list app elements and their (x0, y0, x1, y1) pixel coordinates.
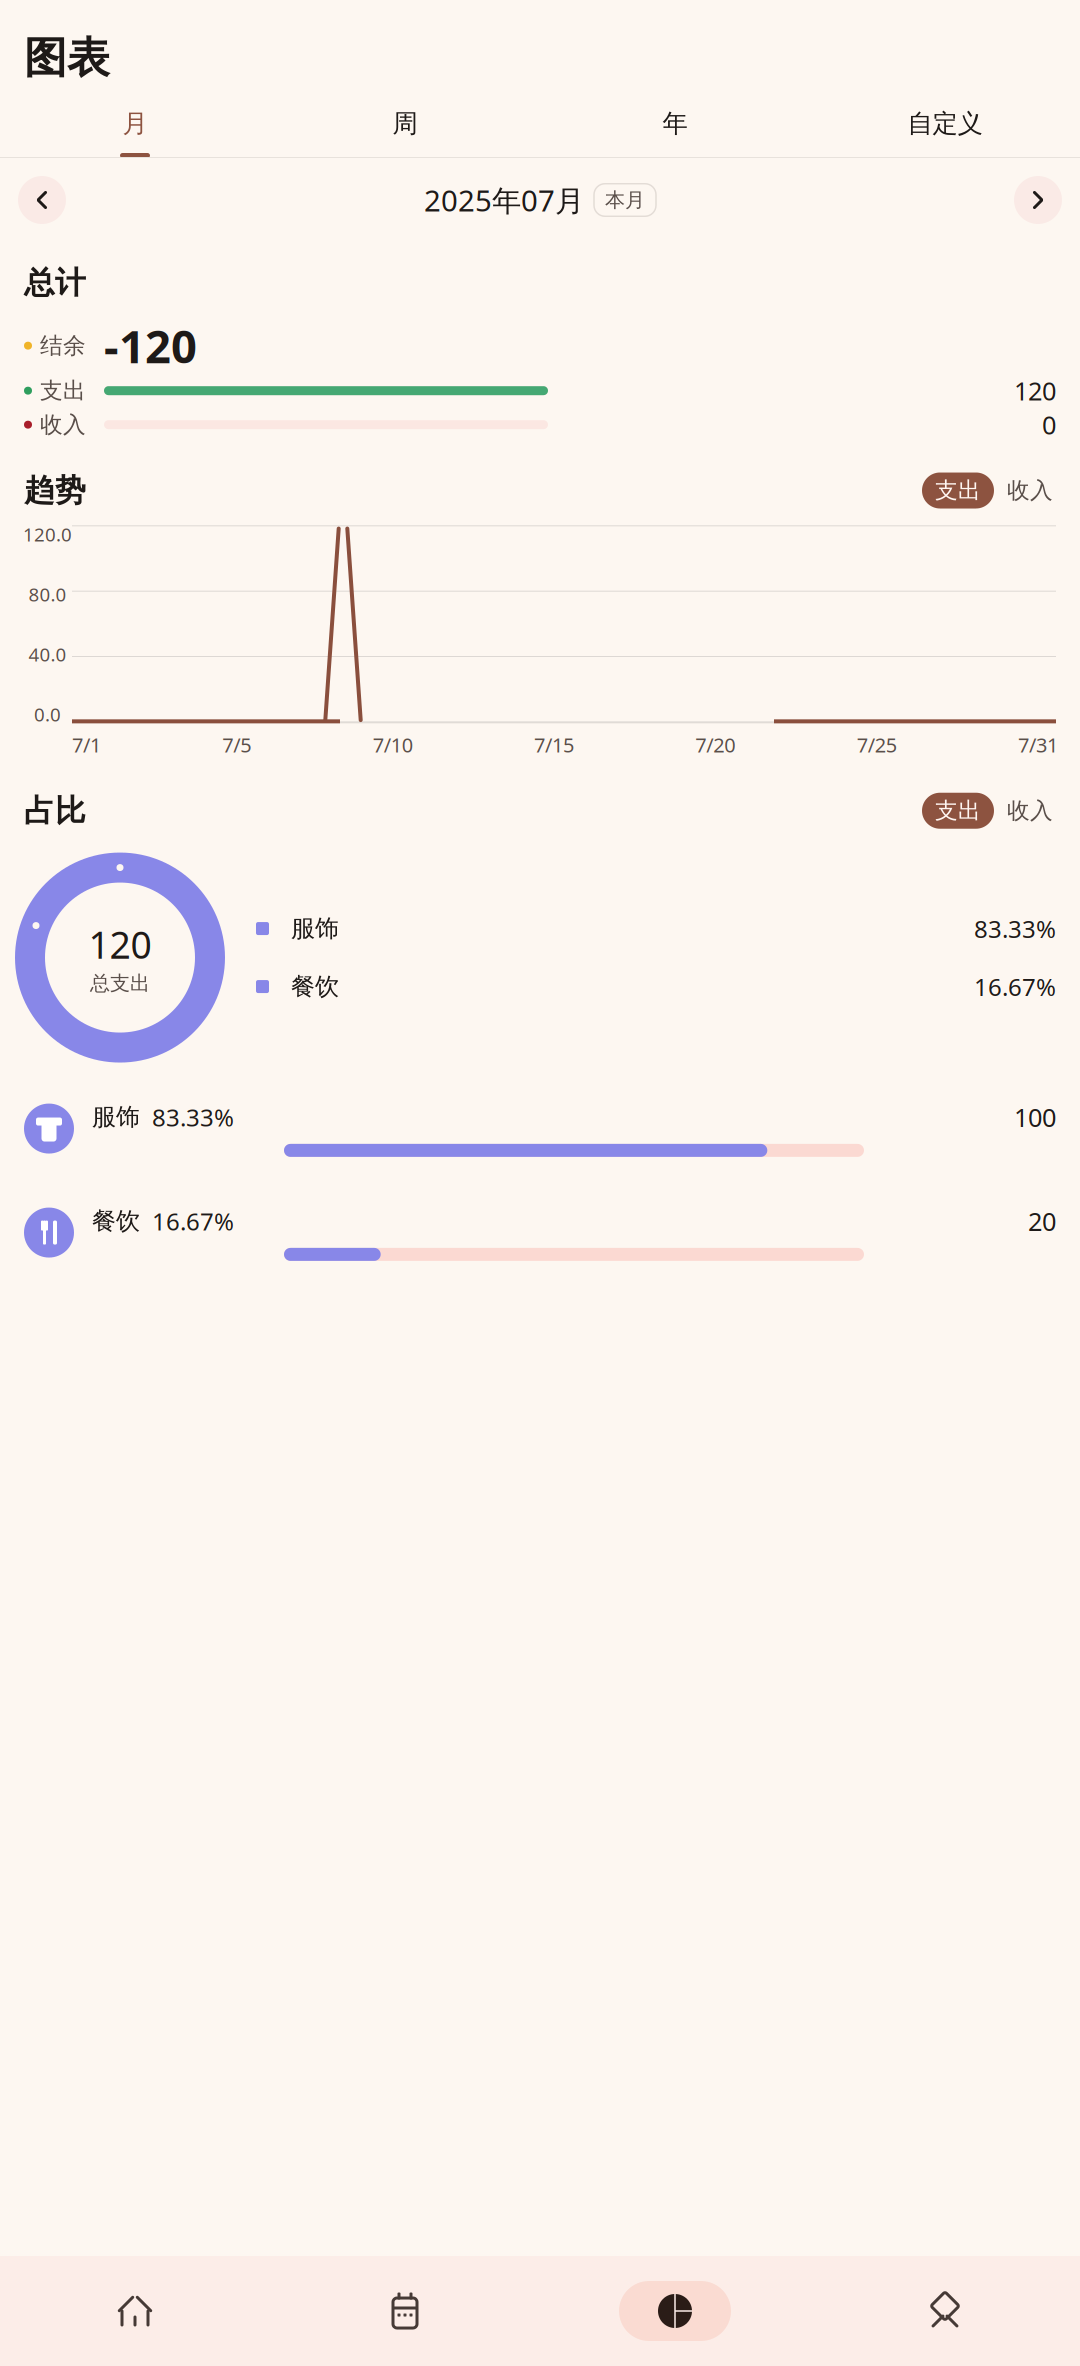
staticText: 7/31 (1018, 731, 1058, 758)
button[interactable]: 日历 (270, 2256, 540, 2366)
staticText: 2025年07月 (424, 180, 584, 219)
staticText: 服饰 (92, 1102, 140, 1132)
button[interactable]: 月 (0, 94, 270, 158)
staticText: 结余 (40, 332, 86, 359)
button[interactable]: 首页 (0, 2256, 270, 2366)
staticText: 7/1 (72, 731, 101, 758)
staticText: 趋势 (24, 472, 86, 509)
staticText: 自定义 (907, 108, 982, 139)
button[interactable]: 下个月 (1014, 176, 1062, 224)
staticText: 占比 (24, 792, 86, 830)
staticText: 83.33% (974, 913, 1056, 944)
staticText: 收入 (40, 411, 86, 438)
staticText: 收入 (1007, 477, 1053, 504)
staticText: 本月 (605, 188, 645, 212)
button[interactable]: 支出 (922, 472, 994, 508)
staticText: 总计 (24, 264, 86, 302)
button[interactable]: 餐饮 (0, 1188, 1080, 1278)
staticText: 餐饮 (291, 972, 339, 1001)
button[interactable]: 更多 (810, 2256, 1080, 2366)
staticText: 支出 (935, 797, 981, 825)
staticText: 0.0 (34, 702, 61, 727)
button[interactable]: 收入 (1004, 793, 1056, 829)
staticText: -120 (104, 316, 197, 376)
staticText: 7/5 (222, 731, 251, 758)
staticText: 83.33% (152, 1101, 234, 1133)
staticText: 120 (88, 919, 151, 969)
staticText: 120.0 (23, 522, 72, 547)
staticText: 支出 (40, 377, 86, 404)
button[interactable]: 图表 (540, 2256, 810, 2366)
staticText: 收入 (1007, 797, 1053, 825)
staticText: 120 (1014, 374, 1056, 407)
staticText: 年 (662, 108, 687, 139)
staticText: 80.0 (28, 582, 66, 607)
staticText: 7/25 (857, 731, 897, 758)
button[interactable]: 周 (270, 94, 540, 158)
staticText: 20 (1028, 1204, 1056, 1238)
button[interactable]: 年 (540, 94, 810, 158)
staticText: 100 (1014, 1100, 1056, 1134)
staticText: 16.67% (152, 1205, 234, 1237)
staticText: 支出 (935, 477, 981, 504)
button[interactable]: 服饰 (0, 1084, 1080, 1174)
staticText: 40.0 (28, 642, 66, 667)
staticText: 7/15 (534, 731, 574, 758)
staticText: 月 (122, 108, 147, 139)
staticText: 7/10 (373, 731, 413, 758)
button[interactable]: 本月 (594, 184, 656, 216)
staticText: 周 (392, 108, 417, 139)
staticText: 0 (1042, 408, 1056, 441)
button[interactable]: 支出 (922, 793, 994, 829)
button[interactable]: 上个月 (18, 176, 66, 224)
button[interactable]: 自定义 (810, 94, 1080, 158)
staticText: 图表 (24, 32, 110, 84)
staticText: 服饰 (291, 914, 339, 943)
staticText: 餐饮 (92, 1206, 140, 1236)
staticText: 7/20 (695, 731, 735, 758)
staticText: 16.67% (974, 971, 1056, 1002)
button[interactable]: 收入 (1004, 472, 1056, 508)
staticText: 总支出 (90, 971, 150, 996)
